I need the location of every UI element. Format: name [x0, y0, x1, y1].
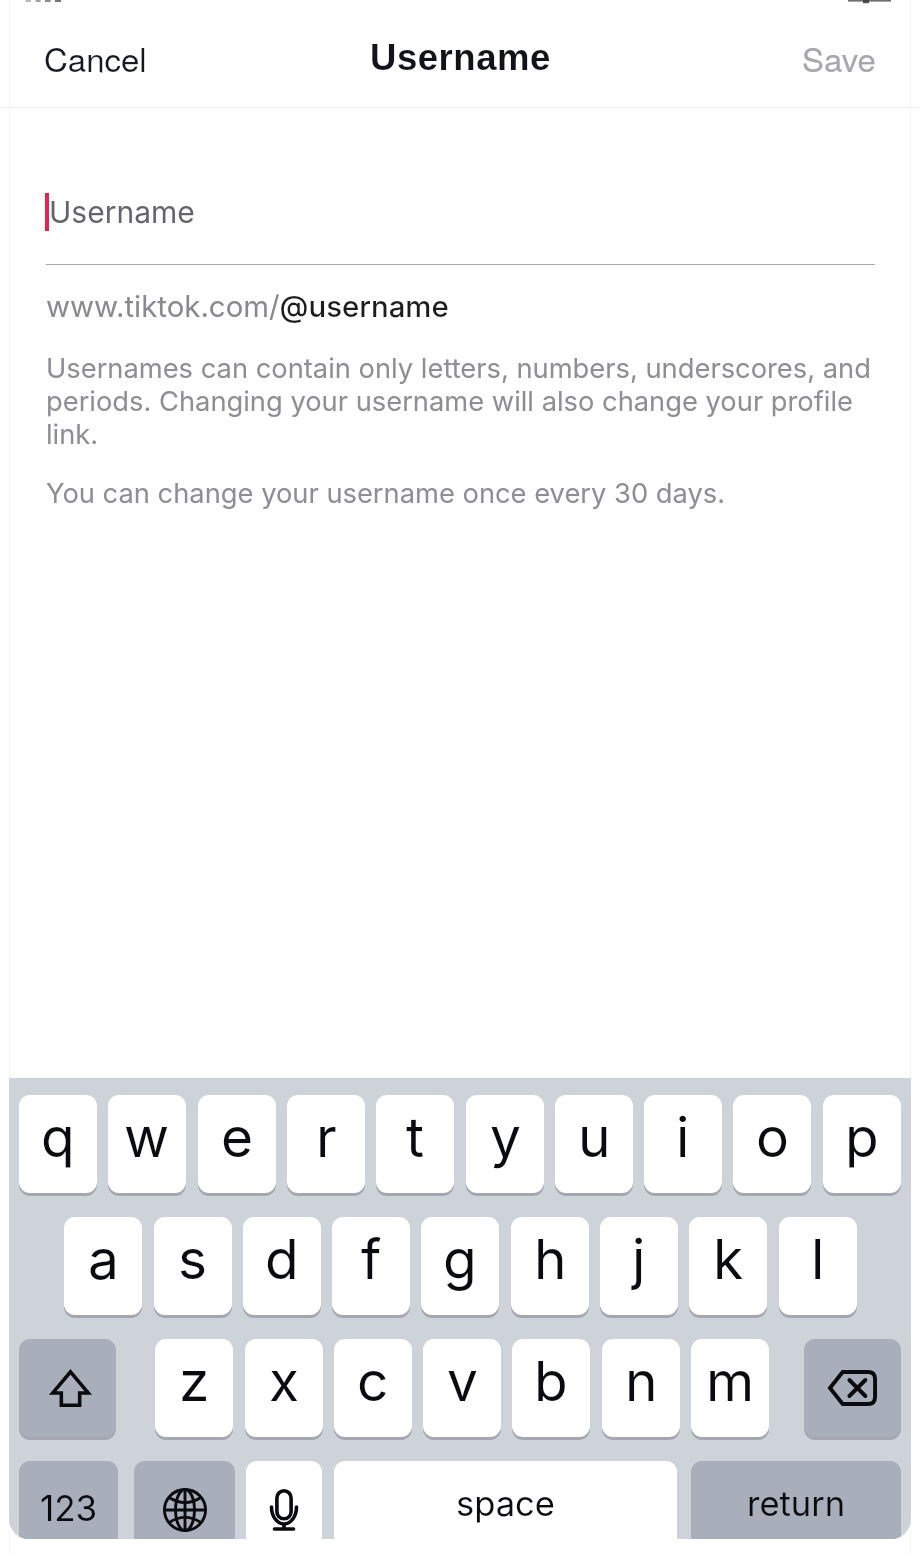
button[interactable]: i: [644, 1095, 722, 1193]
button[interactable]: space: [334, 1461, 677, 1539]
button[interactable]: z: [155, 1339, 233, 1437]
button[interactable]: h: [511, 1217, 589, 1315]
staticText: m: [706, 1348, 755, 1415]
staticText: w: [124, 1104, 170, 1171]
staticText: y: [490, 1104, 521, 1171]
button[interactable]: v: [423, 1339, 501, 1437]
button[interactable]: o: [733, 1095, 811, 1193]
button[interactable]: b: [512, 1339, 590, 1437]
staticText: 123: [40, 1487, 98, 1529]
button[interactable]: n: [602, 1339, 680, 1437]
button[interactable]: a: [64, 1217, 142, 1315]
staticText: r: [316, 1104, 337, 1171]
button[interactable]: return: [691, 1461, 901, 1539]
button[interactable]: m: [691, 1339, 769, 1437]
staticText: b: [534, 1348, 568, 1415]
button[interactable]: g: [421, 1217, 499, 1315]
staticText: z: [179, 1348, 210, 1415]
staticText: d: [265, 1226, 299, 1293]
button[interactable]: Shift: [19, 1339, 116, 1437]
staticText: t: [406, 1104, 424, 1171]
staticText: a: [88, 1226, 119, 1293]
button[interactable]: c: [334, 1339, 412, 1437]
staticText: u: [578, 1104, 611, 1171]
button[interactable]: Next keyboard: [134, 1461, 235, 1539]
button[interactable]: e: [198, 1095, 276, 1193]
button[interactable]: Save: [802, 34, 876, 81]
button[interactable]: Dictate: [246, 1461, 322, 1539]
button[interactable]: w: [108, 1095, 186, 1193]
staticText: Username: [49, 194, 195, 230]
button[interactable]: y: [466, 1095, 544, 1193]
staticText: Username: [370, 37, 551, 78]
staticText: p: [845, 1104, 879, 1171]
staticText: j: [632, 1226, 646, 1293]
staticText: i: [676, 1104, 690, 1171]
button[interactable]: f: [332, 1217, 410, 1315]
button[interactable]: s: [154, 1217, 232, 1315]
staticText: You can change your username once every …: [46, 477, 875, 510]
staticText: f: [361, 1226, 382, 1293]
button[interactable]: p: [823, 1095, 901, 1193]
button[interactable]: 123: [19, 1461, 118, 1539]
button[interactable]: k: [689, 1217, 767, 1315]
staticText: v: [447, 1348, 478, 1415]
staticText: g: [443, 1226, 477, 1293]
staticText: Usernames can contain only letters, numb…: [46, 352, 875, 451]
staticText: e: [221, 1104, 254, 1171]
staticText: return: [747, 1483, 846, 1525]
button[interactable]: d: [243, 1217, 321, 1315]
staticText: k: [713, 1226, 744, 1293]
button[interactable]: u: [555, 1095, 633, 1193]
button[interactable]: t: [376, 1095, 454, 1193]
staticText: Cancel: [44, 34, 147, 81]
staticText: Save: [802, 34, 876, 81]
staticText: s: [178, 1226, 208, 1293]
button[interactable]: j: [600, 1217, 678, 1315]
staticText: h: [534, 1226, 567, 1293]
staticText: q: [41, 1104, 75, 1171]
staticText: www.tiktok.com/@username: [46, 289, 449, 325]
button[interactable]: q: [19, 1095, 97, 1193]
staticText: space: [456, 1483, 555, 1525]
staticText: x: [269, 1348, 300, 1415]
button[interactable]: Cancel: [44, 34, 147, 81]
staticText: l: [811, 1226, 825, 1293]
button[interactable]: l: [779, 1217, 857, 1315]
button[interactable]: x: [245, 1339, 323, 1437]
button[interactable]: r: [287, 1095, 365, 1193]
staticText: o: [756, 1104, 789, 1171]
staticText: n: [625, 1348, 658, 1415]
staticText: c: [357, 1348, 389, 1415]
button[interactable]: Backspace: [804, 1339, 901, 1437]
